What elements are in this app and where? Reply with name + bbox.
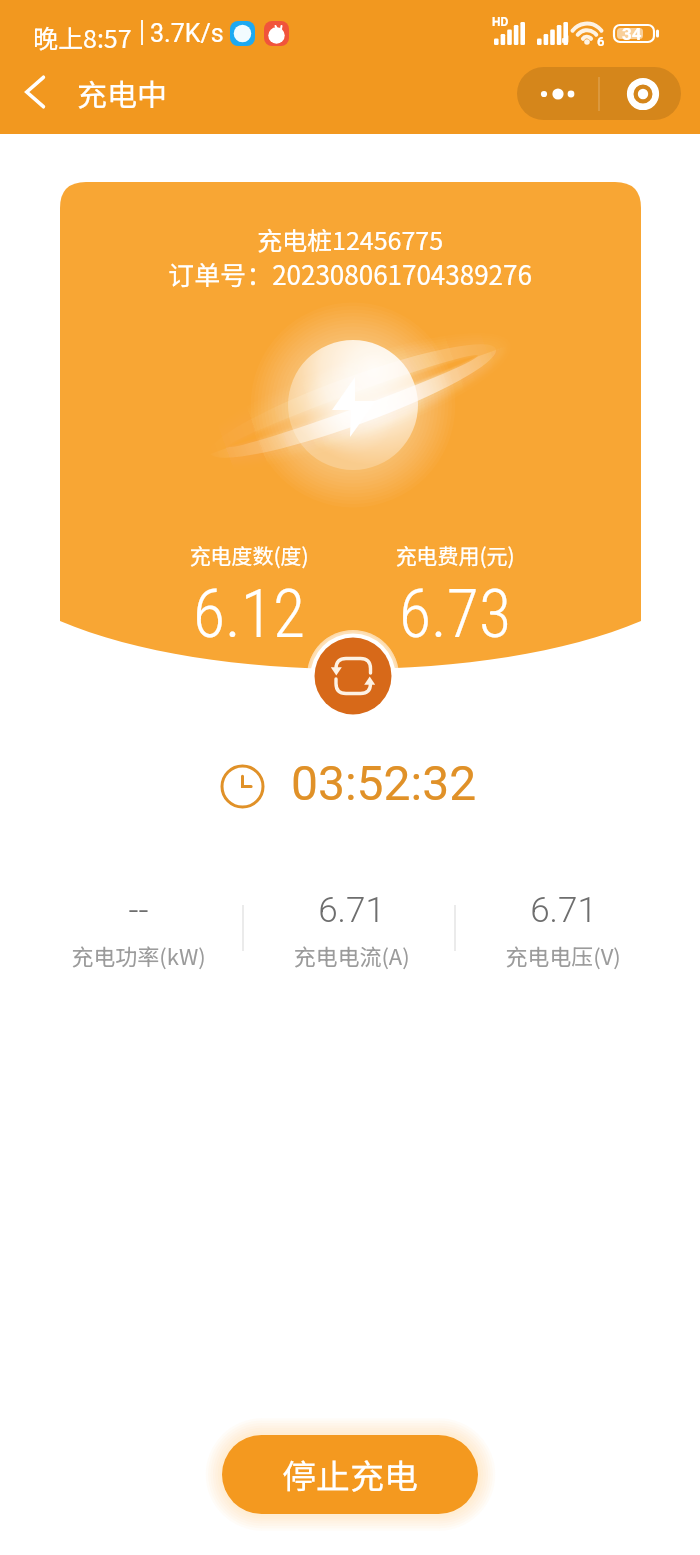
staticText: 充电费用(元) — [395, 540, 515, 570]
button[interactable]: Close — [600, 67, 681, 120]
staticText: 充电桩12456775 — [0, 221, 700, 257]
button[interactable]: 6.71 — [245, 890, 457, 971]
staticText: 6.71 — [530, 890, 597, 931]
staticText: 6 — [597, 34, 605, 49]
button[interactable]: 停止充电 — [222, 1435, 478, 1514]
staticText: -- — [128, 890, 149, 931]
staticText: 6.71 — [318, 890, 385, 931]
staticText: 停止充电 — [282, 1450, 418, 1499]
staticText: 充电电压(V) — [505, 939, 621, 971]
button[interactable]: 6.71 — [457, 890, 669, 971]
staticText: 6.12 — [193, 576, 305, 653]
button[interactable]: Refresh — [307, 630, 399, 722]
staticText: 3.7K/s — [150, 19, 224, 48]
staticText: 充电度数(度) — [189, 540, 309, 570]
staticText: 订单号：202308061704389276 — [0, 255, 700, 293]
staticText: 03:52:32 — [291, 755, 477, 811]
staticText: 充电电流(A) — [293, 939, 410, 971]
staticText: 充电功率(kW) — [71, 939, 206, 971]
staticText: 34 — [622, 24, 642, 44]
staticText: 晚上8:57 — [33, 19, 132, 55]
button[interactable]: Back — [10, 65, 64, 119]
button[interactable]: More options — [517, 67, 598, 120]
staticText: HD — [492, 15, 509, 29]
button[interactable]: -- — [32, 890, 244, 971]
staticText: 充电中 — [77, 71, 167, 114]
staticText: 6.73 — [399, 576, 511, 653]
